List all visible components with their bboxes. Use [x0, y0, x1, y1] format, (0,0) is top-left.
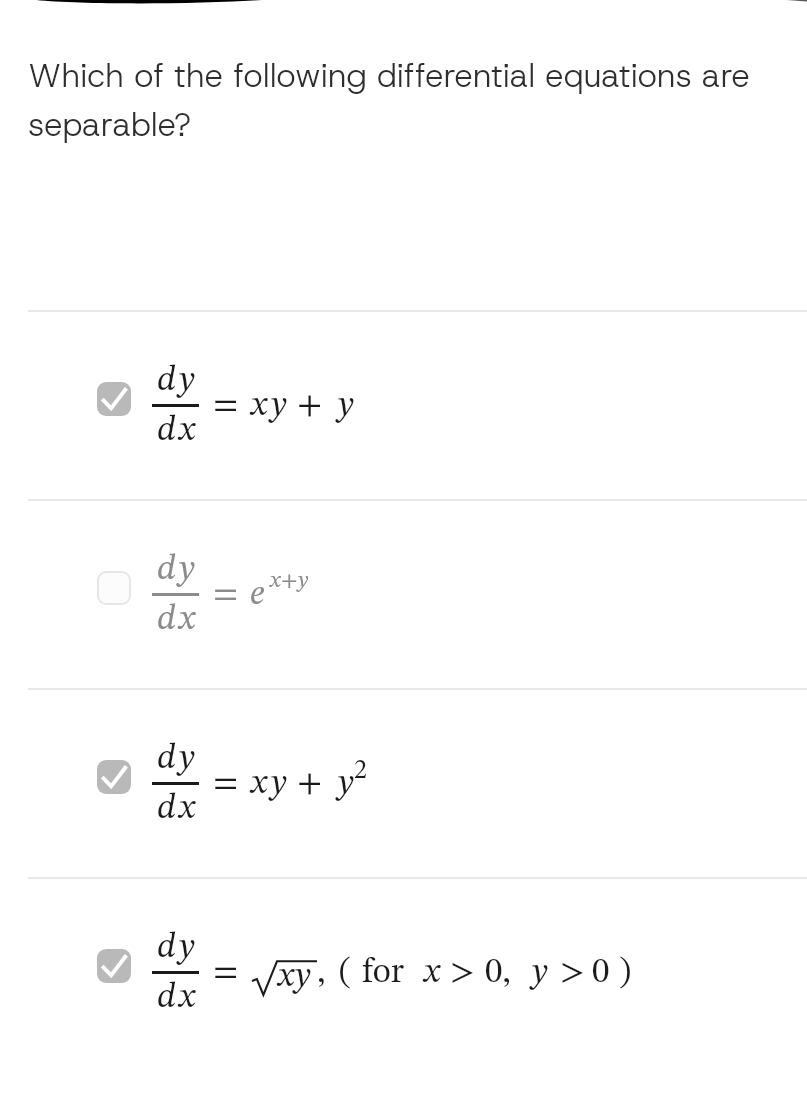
button[interactable]: Answer selected	[97, 760, 131, 794]
staticText: d	[157, 602, 176, 637]
staticText: y	[179, 741, 195, 776]
staticText: y	[179, 363, 195, 398]
button[interactable]: Answer selected	[97, 382, 131, 416]
staticText: x	[270, 569, 281, 592]
staticText: x	[179, 791, 195, 826]
staticText: +	[281, 569, 298, 592]
staticText: x	[179, 602, 195, 637]
staticText: d	[157, 741, 176, 776]
staticText: x	[179, 413, 195, 448]
staticText: =	[213, 955, 239, 990]
staticText: y	[271, 766, 287, 801]
button[interactable]: Answer not selected	[0, 501, 807, 688]
staticText: y	[295, 959, 311, 994]
staticText: y	[179, 930, 195, 965]
staticText: +	[297, 766, 323, 801]
staticText: x	[251, 388, 267, 423]
staticText: ,	[317, 955, 326, 990]
staticText: d	[157, 552, 176, 587]
staticText: y	[298, 569, 309, 592]
staticText: d	[157, 363, 176, 398]
staticText: y	[179, 552, 195, 587]
staticText: y	[338, 766, 354, 801]
staticText: x	[179, 980, 195, 1015]
staticText: x	[424, 955, 440, 990]
staticText: >	[560, 955, 585, 990]
staticText: for	[362, 955, 405, 990]
staticText: >	[450, 955, 475, 990]
staticText: Which of the following differential equa…	[28, 54, 789, 147]
staticText: =	[213, 388, 239, 423]
staticText: d	[157, 413, 176, 448]
button[interactable]: Answer selected	[0, 879, 807, 1066]
staticText: 2	[354, 758, 367, 784]
staticText: =	[213, 766, 239, 801]
staticText: d	[157, 930, 176, 965]
staticText: d	[157, 791, 176, 826]
staticText: y	[338, 388, 354, 423]
staticText: y	[271, 388, 287, 423]
button[interactable]: Answer selected	[0, 690, 807, 877]
button[interactable]: Answer selected	[97, 949, 131, 983]
staticText: +	[297, 388, 323, 423]
staticText: x	[278, 959, 294, 994]
staticText: (	[339, 955, 352, 990]
staticText: e	[250, 577, 265, 612]
staticText: )	[619, 955, 632, 990]
staticText: =	[213, 577, 239, 612]
button[interactable]: Answer selected	[0, 312, 807, 499]
button[interactable]: Answer not selected	[97, 571, 131, 605]
staticText: d	[157, 980, 176, 1015]
staticText: y	[532, 955, 548, 990]
staticText: 0	[592, 955, 610, 990]
staticText: 0,	[485, 955, 511, 990]
staticText: x	[251, 766, 267, 801]
